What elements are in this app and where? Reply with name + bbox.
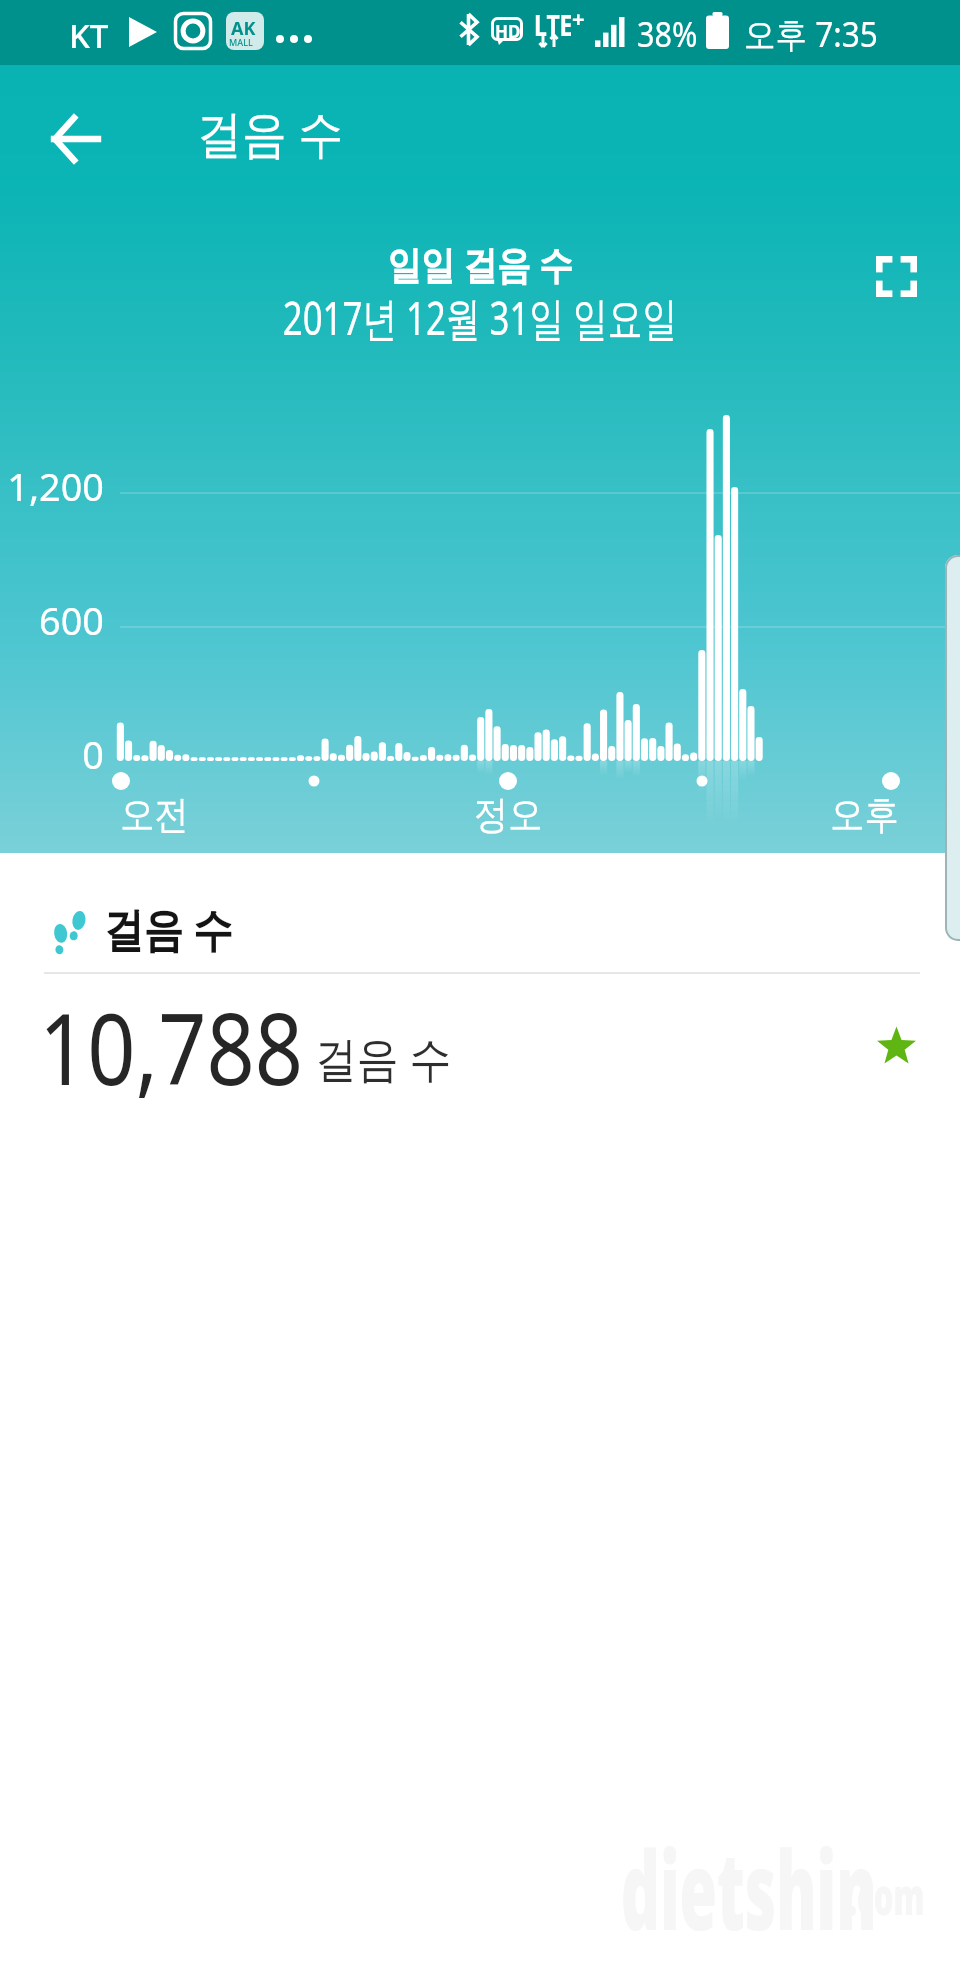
staticText: 오후	[830, 790, 899, 839]
button[interactable]: Back	[30, 94, 120, 184]
staticText: .com	[848, 1862, 925, 1930]
staticText: 오후 7:35	[744, 10, 878, 58]
staticText: 일일 걸음 수	[67, 237, 893, 290]
staticText: 1,200	[0, 459, 104, 512]
staticText: 0	[0, 727, 104, 780]
staticText: 걸음 수	[197, 97, 344, 167]
staticText: 600	[0, 593, 104, 646]
staticText: +	[572, 3, 585, 33]
staticText: 오전	[120, 790, 189, 839]
staticText: 걸음 수	[315, 1025, 452, 1091]
staticText: 정오	[455, 790, 561, 839]
staticText: AK	[231, 16, 256, 41]
button[interactable]: Full screen	[851, 231, 941, 321]
staticText: 2017년 12월 31일 일요일	[118, 286, 842, 349]
staticText: KT	[69, 13, 109, 58]
staticText: 10,788	[39, 980, 303, 1113]
staticText: HD	[495, 20, 521, 43]
staticText: 38%	[637, 11, 698, 57]
button[interactable]: Favourite	[854, 1003, 938, 1087]
staticText: dietshin	[621, 1815, 877, 1962]
staticText: LTE	[534, 6, 572, 44]
staticText: MALL	[229, 36, 253, 48]
staticText: 걸음 수	[104, 897, 233, 960]
